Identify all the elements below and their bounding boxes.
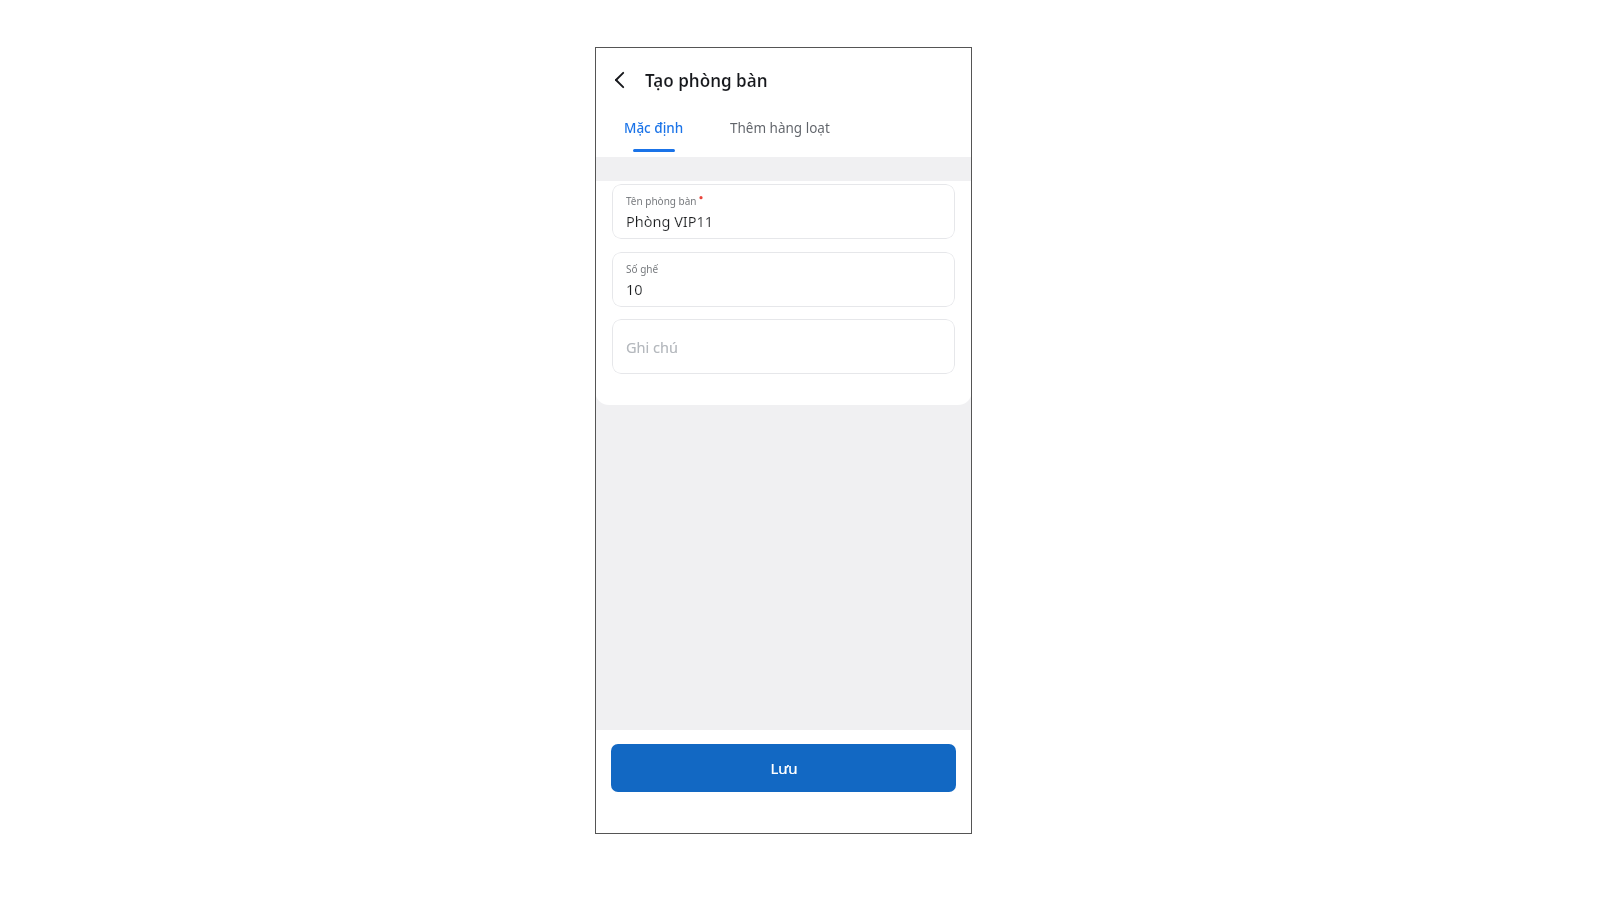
staticText: Ghi chú [626,337,678,357]
button[interactable]: Lưu [611,744,956,792]
staticText: Mặc định [624,119,684,137]
staticText: Thêm hàng loạt [730,119,830,137]
button[interactable]: Back [603,63,637,97]
staticText: Tạo phòng bàn [645,69,768,92]
staticText: Phòng VIP11 [626,211,714,231]
button[interactable]: Số ghế [612,252,955,307]
staticText: Số ghế [626,262,659,276]
button[interactable]: Tên phòng bàn [612,184,955,239]
button[interactable]: Mặc định [612,113,696,157]
staticText: Lưu [770,758,798,778]
staticText: 10 [626,279,643,299]
staticText: Tên phòng bàn [626,194,697,208]
button[interactable]: Thêm hàng loạt [718,113,842,157]
button[interactable]: Ghi chú [612,319,955,374]
